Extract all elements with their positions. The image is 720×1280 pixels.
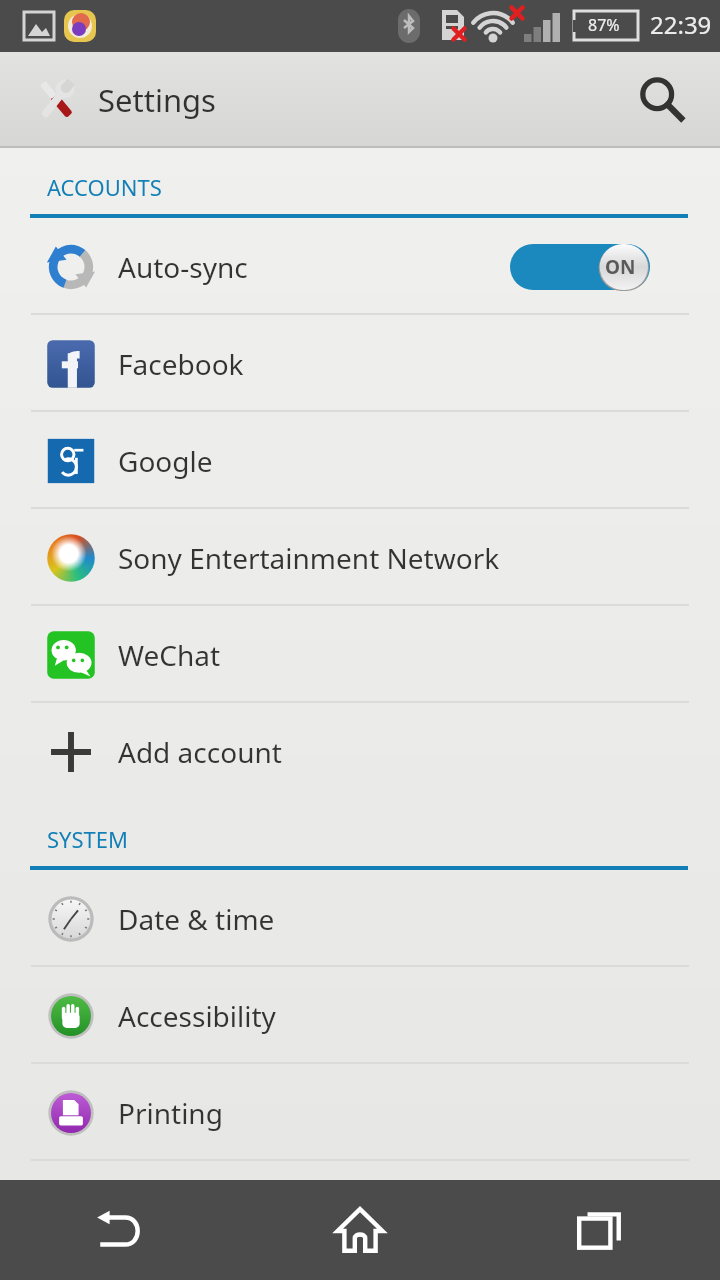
staticText: Add account (118, 733, 282, 771)
button[interactable]: Accessibility (0, 967, 720, 1064)
staticText: WeChat (118, 636, 221, 674)
button[interactable]: Date & time (0, 870, 720, 967)
staticText: Date & time (118, 900, 275, 938)
button[interactable]: Recents (480, 1180, 720, 1280)
button[interactable]: Sony Entertainment Network (0, 509, 720, 606)
button[interactable]: Search (614, 52, 710, 148)
button[interactable]: Printing (0, 1064, 720, 1161)
staticText: Sony Entertainment Network (118, 539, 500, 577)
button[interactable]: Home (240, 1180, 480, 1280)
staticText: Settings (98, 79, 216, 121)
button[interactable]: Auto-sync (0, 218, 720, 315)
button[interactable]: Facebook (0, 315, 720, 412)
staticText: ON (605, 254, 636, 280)
staticText: ACCOUNTS (47, 172, 162, 202)
button[interactable]: WeChat (0, 606, 720, 703)
staticText: 87% (588, 14, 620, 36)
staticText: Printing (118, 1094, 223, 1132)
staticText: Auto-sync (118, 248, 248, 286)
button[interactable]: Add account (0, 703, 720, 800)
staticText: Google (118, 442, 213, 480)
button[interactable]: Google (0, 412, 720, 509)
staticText: Accessibility (118, 997, 276, 1035)
staticText: Facebook (118, 345, 244, 383)
staticText: 22:39 (650, 8, 712, 41)
staticText: SYSTEM (47, 824, 129, 854)
button[interactable]: Back (0, 1180, 240, 1280)
